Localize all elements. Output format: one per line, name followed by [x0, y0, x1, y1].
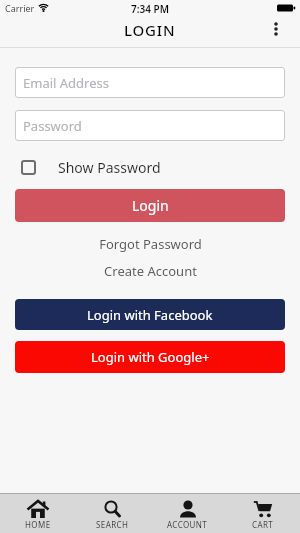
staticText: CART [252, 519, 274, 530]
staticText: SEARCH [96, 519, 129, 530]
staticText: HOME [25, 519, 51, 530]
staticText: ACCOUNT [167, 519, 208, 530]
button[interactable]: CART [225, 494, 300, 533]
button[interactable]: Login [15, 189, 285, 222]
staticText: Carrier [5, 2, 35, 14]
button[interactable] [268, 21, 284, 37]
staticText: Show Password [58, 158, 161, 177]
staticText: Login with Google+ [91, 348, 210, 366]
button[interactable]: Login with Facebook [15, 299, 285, 330]
button[interactable]: ACCOUNT [150, 494, 225, 533]
button[interactable]: HOME [0, 494, 75, 533]
staticText: LOGIN [124, 20, 176, 37]
button[interactable]: Show Password [15, 158, 161, 177]
button[interactable]: Email Address [15, 67, 285, 98]
button[interactable]: SEARCH [75, 494, 150, 533]
button[interactable]: Login with Google+ [15, 341, 285, 373]
staticText: 7:34 PM [131, 2, 169, 16]
staticText: Forgot Password [99, 235, 202, 253]
button[interactable]: Forgot Password [15, 235, 285, 253]
staticText: Email Address [23, 74, 109, 92]
button[interactable]: Password [15, 110, 285, 141]
staticText: Login [132, 196, 169, 215]
staticText: Create Account [104, 262, 197, 280]
button[interactable]: Create Account [15, 262, 285, 280]
staticText: Password [23, 117, 82, 135]
staticText: Login with Facebook [87, 306, 213, 324]
